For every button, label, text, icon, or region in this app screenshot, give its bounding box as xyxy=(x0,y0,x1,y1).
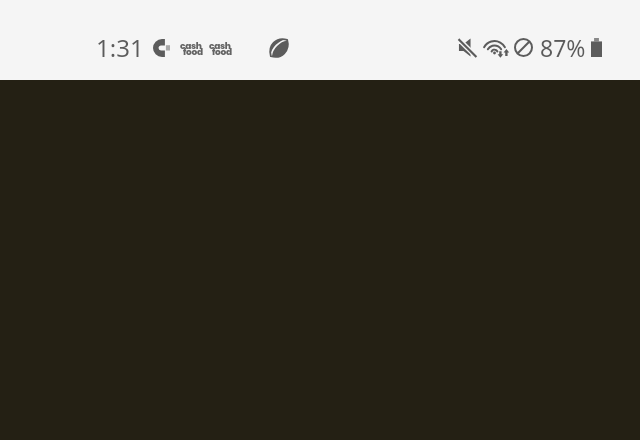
staticText: cash xyxy=(180,40,202,53)
staticText: 87% xyxy=(540,32,586,63)
button[interactable]: Wi-Fi connected xyxy=(484,38,509,58)
staticText: food xyxy=(183,46,203,59)
staticText: food xyxy=(212,46,232,59)
button[interactable]: Do not disturb xyxy=(514,38,533,57)
staticText: 1:31 xyxy=(96,31,144,64)
button[interactable]: Leaf app notification xyxy=(270,39,288,57)
button[interactable]: Screen cast active xyxy=(153,39,170,57)
button[interactable]: cash food notification xyxy=(180,39,203,57)
button[interactable]: cash food notification xyxy=(209,39,232,57)
button[interactable]: 1:31 xyxy=(96,31,144,64)
button[interactable]: Battery 87 percent xyxy=(540,32,602,63)
staticText: cash xyxy=(209,40,231,53)
button[interactable]: Status bar xyxy=(0,0,640,80)
button[interactable]: Sound muted xyxy=(458,38,477,57)
